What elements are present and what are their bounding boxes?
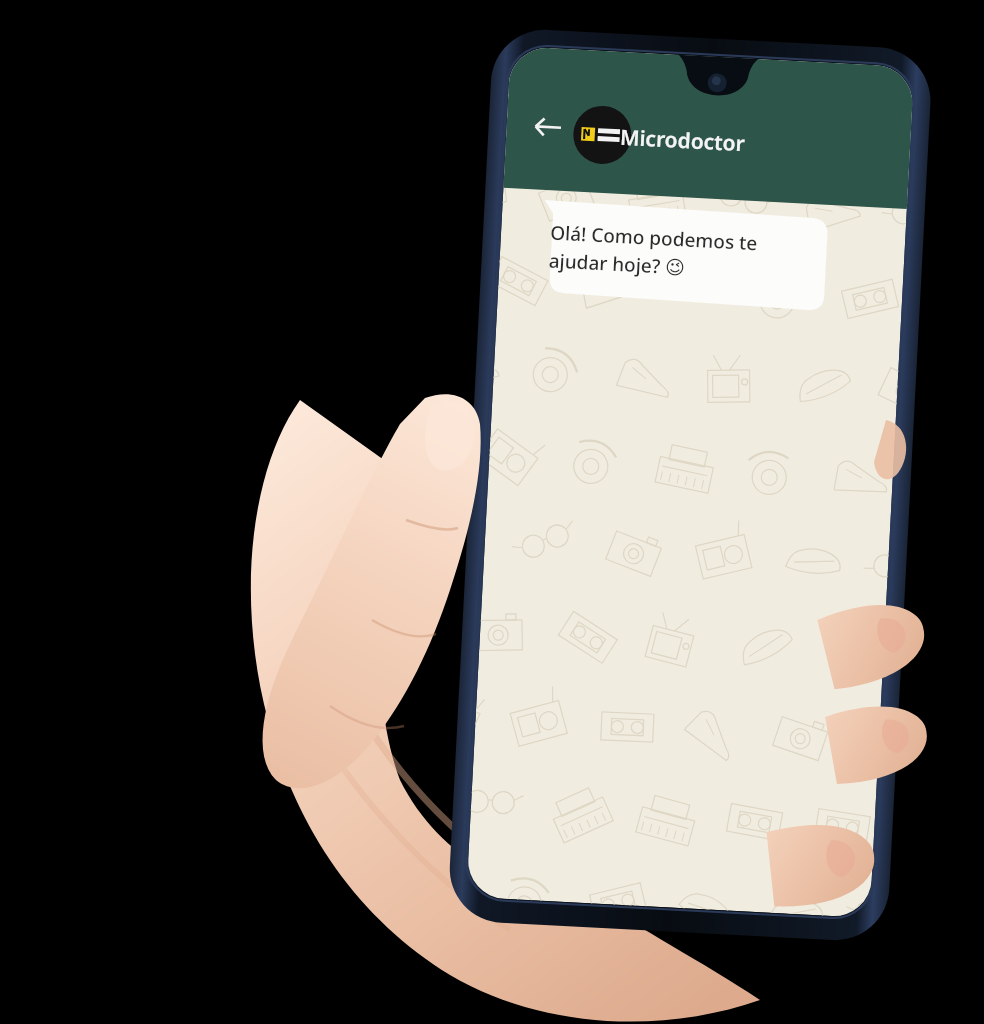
staticText: Microdoctor [619, 123, 746, 158]
staticText: Olá! Como podemos te ajudar hoje? 😉 [548, 219, 803, 286]
button[interactable]: Microdoctor profile photo [553, 110, 611, 168]
button[interactable] [612, 112, 862, 168]
button[interactable] [528, 206, 816, 306]
button[interactable]: Back [505, 110, 553, 160]
